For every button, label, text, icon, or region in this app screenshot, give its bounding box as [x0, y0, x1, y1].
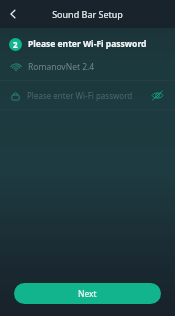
button[interactable]: Back — [0, 1, 26, 27]
button[interactable]: RomanovNet 2.4 — [0, 58, 175, 75]
staticText: Please enter Wi-Fi password — [27, 90, 149, 101]
staticText: RomanovNet 2.4 — [28, 61, 95, 73]
staticText: 2 — [13, 39, 18, 50]
button[interactable]: Please enter Wi-Fi password — [0, 85, 175, 105]
button[interactable]: Show password — [149, 87, 165, 103]
staticText: Please enter Wi-Fi password — [28, 38, 147, 50]
button[interactable]: Next — [14, 283, 161, 304]
staticText: Sound Bar Setup — [52, 8, 123, 20]
staticText: Next — [78, 288, 97, 300]
